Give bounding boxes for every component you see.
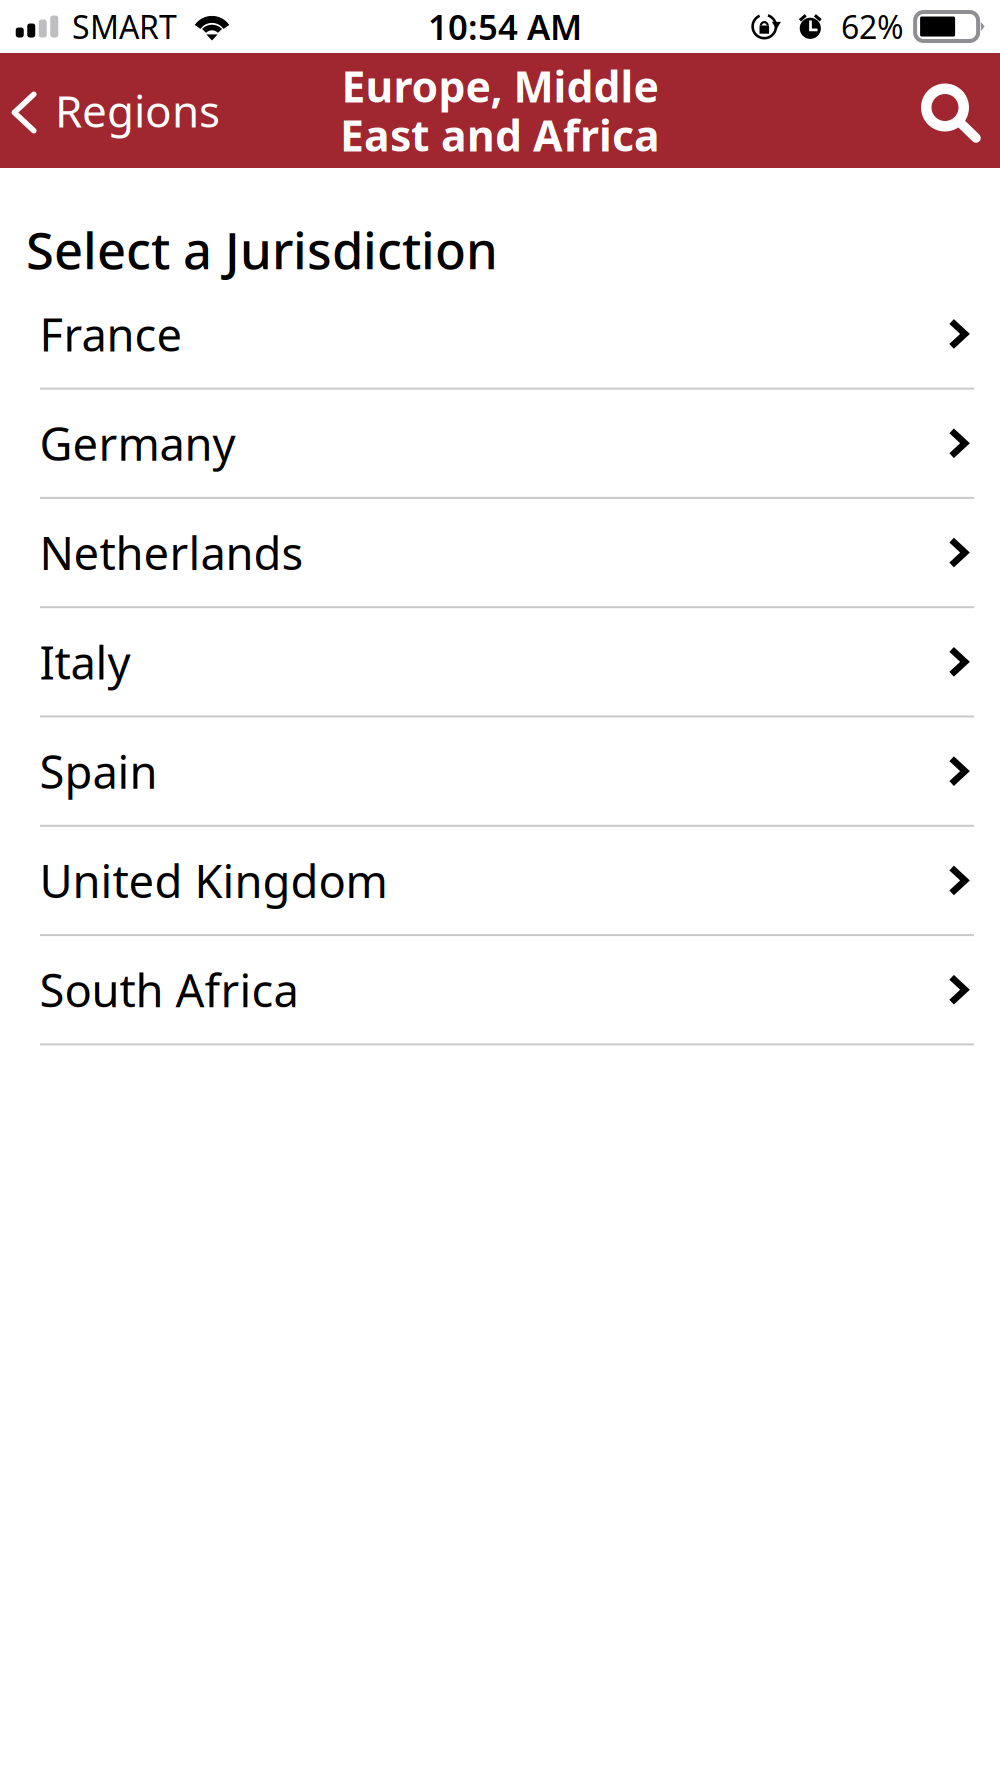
staticText: Spain: [39, 741, 157, 801]
staticText: 10:54 AM: [428, 3, 582, 49]
staticText: United Kingdom: [39, 850, 387, 910]
staticText: Select a Jurisdiction: [26, 216, 498, 283]
staticText: SMART: [72, 5, 177, 48]
button[interactable]: Netherlands: [0, 499, 1000, 608]
staticText: 62%: [841, 5, 904, 48]
button[interactable]: South Africa: [0, 936, 1000, 1045]
button[interactable]: Spain: [0, 717, 1000, 827]
button[interactable]: France: [0, 280, 1000, 390]
staticText: South Africa: [39, 960, 298, 1020]
staticText: France: [39, 304, 182, 364]
button[interactable]: Regions: [0, 53, 238, 168]
button[interactable]: United Kingdom: [0, 827, 1000, 936]
staticText: Europe, Middle: [341, 58, 658, 114]
button[interactable]: Search: [908, 53, 1000, 168]
staticText: Regions: [55, 81, 220, 140]
staticText: Germany: [39, 413, 235, 473]
staticText: Netherlands: [39, 522, 303, 583]
staticText: East and Africa: [340, 107, 660, 163]
button[interactable]: Italy: [0, 608, 1000, 717]
button[interactable]: Germany: [0, 390, 1000, 499]
staticText: Italy: [39, 632, 130, 692]
